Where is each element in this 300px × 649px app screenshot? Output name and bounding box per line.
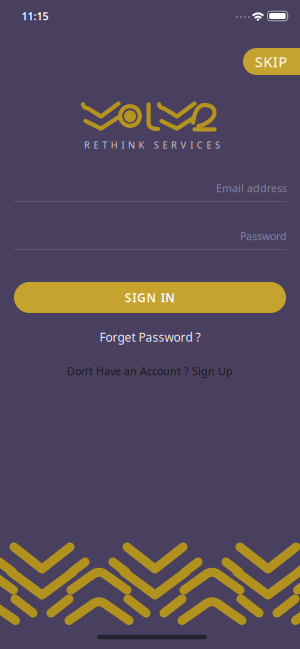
staticText: 11:15 [21, 9, 48, 23]
button[interactable]: Email address [14, 180, 287, 208]
staticText: Password [240, 229, 287, 243]
staticText: RETHINK SERVICES [84, 139, 220, 151]
staticText: Email address [216, 181, 287, 195]
button[interactable]: Password [14, 228, 287, 256]
button[interactable]: Don’t Have an Account ? Sign Up [20, 360, 280, 382]
button[interactable]: Forget Password ? [50, 326, 250, 348]
staticText: Forget Password ? [99, 329, 200, 345]
button[interactable]: SKIP [0, 0, 300, 649]
staticText: SIGN IN [125, 289, 175, 305]
staticText: Don’t Have an Account ? Sign Up [67, 364, 233, 378]
staticText: SKIP [255, 52, 287, 71]
button[interactable]: SIGN IN [14, 282, 286, 313]
